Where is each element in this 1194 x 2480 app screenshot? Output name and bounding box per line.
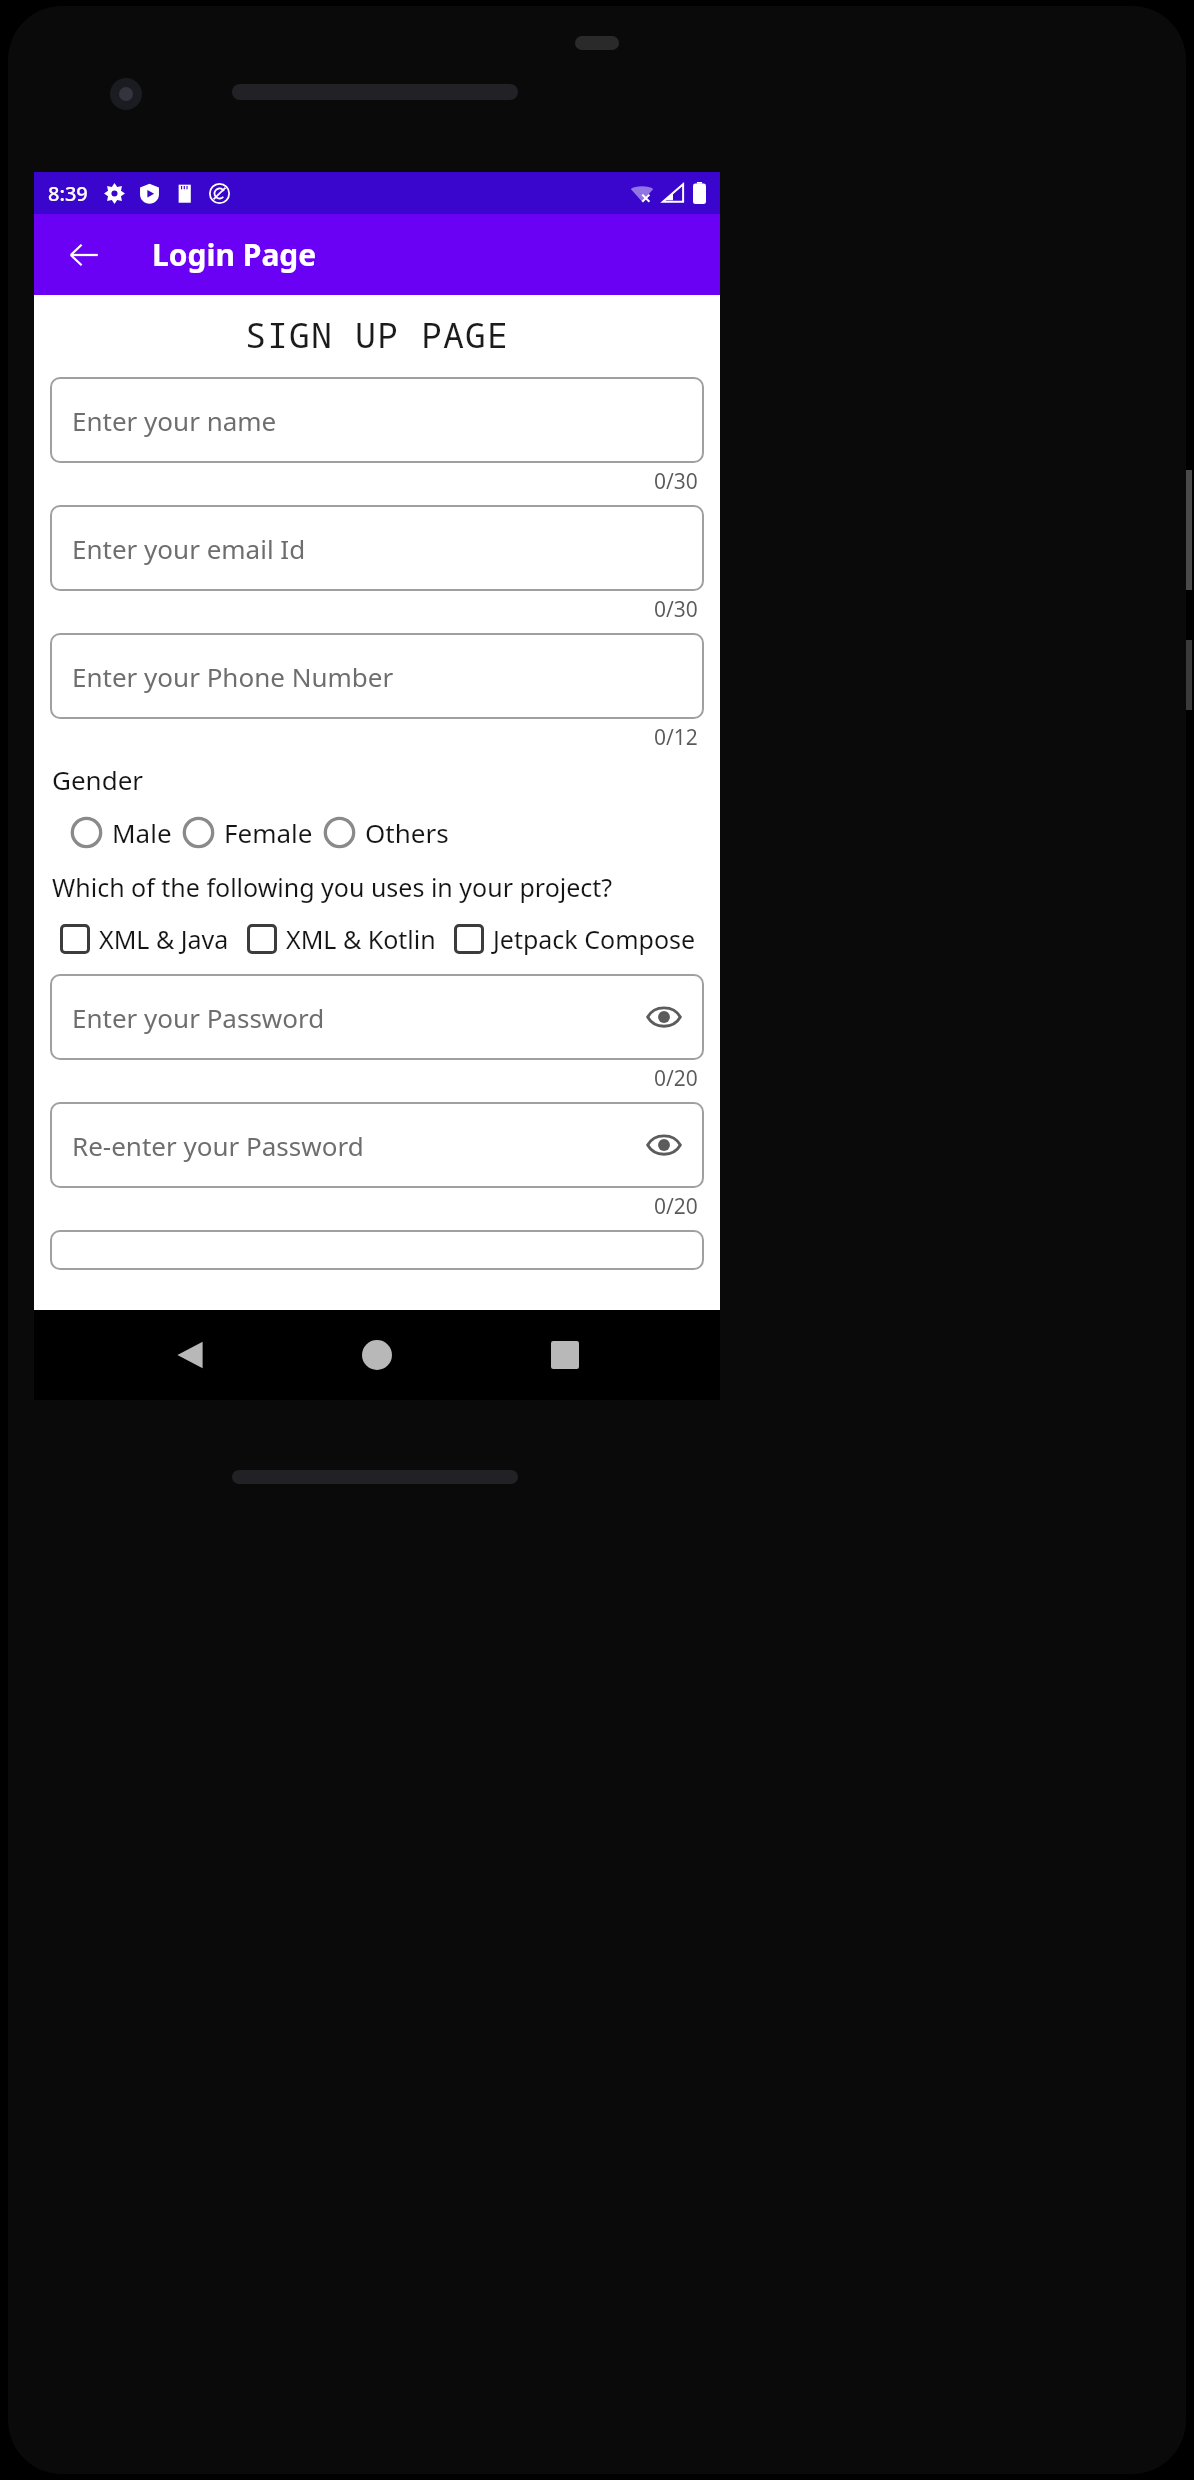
staticText: XML & Java [99, 922, 229, 956]
button[interactable]: Enter your name [50, 377, 704, 463]
staticText: Others [365, 815, 449, 850]
button[interactable]: Male [70, 811, 172, 854]
staticText: Enter your email Id [72, 531, 306, 566]
staticText: Re-enter your Password [72, 1128, 364, 1163]
staticText: Female [224, 815, 313, 850]
button[interactable]: Enter your email Id [50, 505, 704, 591]
staticText: 0/20 [654, 1192, 698, 1221]
staticText: 0/30 [654, 595, 698, 624]
button[interactable]: Female [182, 811, 313, 854]
staticText: Gender [52, 762, 144, 797]
button[interactable]: Home [345, 1323, 409, 1387]
button[interactable]: Recent apps [533, 1323, 597, 1387]
staticText: Enter your name [72, 403, 277, 438]
button[interactable]: Back [158, 1323, 222, 1387]
button[interactable]: Enter your Phone Number [50, 633, 704, 719]
staticText: SIGN UP PAGE [34, 311, 720, 359]
button[interactable]: XML & Kotlin [247, 918, 436, 960]
button[interactable]: Enter your Password [50, 974, 704, 1060]
staticText: Enter your Phone Number [72, 659, 394, 694]
staticText: 0/30 [654, 467, 698, 496]
staticText: Jetpack Compose [493, 922, 696, 956]
button[interactable]: Others [323, 811, 449, 854]
staticText: Male [112, 815, 172, 850]
button[interactable]: Show password [642, 1123, 686, 1167]
button[interactable]: Re-enter your Password [50, 1102, 704, 1188]
staticText: 0/20 [654, 1064, 698, 1093]
staticText: Enter your Password [72, 1000, 325, 1035]
button[interactable]: Jetpack Compose [454, 918, 696, 960]
button[interactable]: XML & Java [60, 918, 229, 960]
staticText: 8:39 [48, 180, 88, 207]
staticText: 0/12 [654, 723, 698, 752]
button[interactable]: Back [60, 231, 108, 279]
button[interactable]: Show password [642, 995, 686, 1039]
staticText: Login Page [152, 234, 317, 275]
staticText: XML & Kotlin [286, 922, 436, 956]
staticText: Which of the following you uses in your … [52, 870, 613, 904]
